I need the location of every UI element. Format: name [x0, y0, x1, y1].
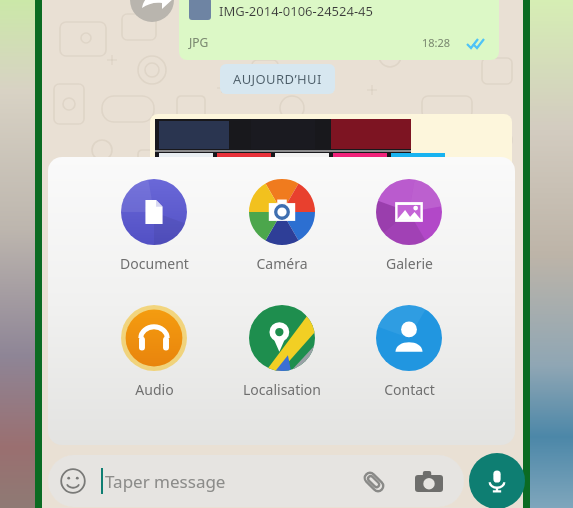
button[interactable]: Caméra	[230, 179, 334, 273]
staticText: IMG-2014-0106-24524-45	[219, 2, 373, 20]
button[interactable]: Localisation	[230, 305, 334, 399]
button[interactable]: Caméra	[415, 471, 443, 493]
button[interactable]: Emoji	[60, 468, 86, 494]
staticText: Galerie	[386, 254, 433, 273]
staticText: Localisation	[243, 380, 321, 399]
staticText: 18:28	[422, 35, 451, 50]
button[interactable]: Joindre	[361, 469, 387, 495]
staticText: Caméra	[256, 254, 308, 273]
staticText: Document	[120, 254, 189, 273]
button[interactable]: Document	[102, 179, 206, 273]
button[interactable]: Contact	[357, 305, 461, 399]
button[interactable]: Emoji	[48, 455, 464, 507]
staticText: JPG	[189, 34, 209, 50]
staticText: AUJOURD’HUI	[233, 70, 322, 88]
staticText: Taper message	[105, 470, 226, 493]
button[interactable]: Message vocal	[469, 453, 525, 508]
staticText: Audio	[135, 380, 174, 399]
button[interactable]: Audio	[102, 305, 206, 399]
staticText: Contact	[384, 380, 435, 399]
button[interactable]: Galerie	[357, 179, 461, 273]
